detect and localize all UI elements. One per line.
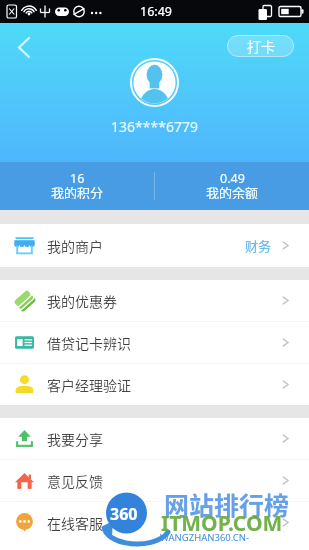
staticText: -WANGZHAN360.CN- bbox=[157, 531, 250, 544]
staticText: 16 bbox=[70, 170, 85, 187]
staticText: 16:49 bbox=[140, 3, 172, 20]
staticText: 在线客服 bbox=[47, 513, 103, 533]
staticText: 我的优惠券 bbox=[47, 291, 117, 311]
staticText: 我的积分 bbox=[51, 183, 104, 199]
button[interactable]: 0.49 bbox=[155, 169, 309, 203]
staticText: 我的商户 bbox=[47, 236, 103, 256]
staticText: 我要分享 bbox=[47, 429, 103, 449]
button[interactable]: 我的商户 bbox=[0, 224, 309, 267]
button[interactable]: 打卡 bbox=[227, 35, 294, 57]
button[interactable]: 我的优惠券 bbox=[0, 280, 309, 321]
staticText: 网站排行榜 bbox=[164, 486, 290, 522]
staticText: 财务 bbox=[245, 236, 272, 255]
staticText: 360 bbox=[110, 503, 138, 525]
staticText: 意见反馈 bbox=[47, 471, 103, 491]
button[interactable]: 借贷记卡辨识 bbox=[0, 322, 309, 363]
staticText: 0.49 bbox=[220, 170, 245, 187]
staticText: ITMOP.COM bbox=[161, 509, 283, 538]
staticText: 136****6779 bbox=[111, 117, 198, 136]
button[interactable]: 在线客服 bbox=[0, 502, 309, 543]
button[interactable]: 意见反馈 bbox=[0, 460, 309, 501]
staticText: 我的余额 bbox=[206, 183, 259, 199]
button[interactable]: 16 bbox=[0, 169, 154, 203]
button[interactable]: 客户经理验证 bbox=[0, 364, 309, 405]
button[interactable]: Back bbox=[4, 29, 44, 69]
staticText: 客户经理验证 bbox=[47, 375, 131, 395]
staticText: 借贷记卡辨识 bbox=[47, 333, 131, 353]
staticText: 打卡 bbox=[247, 36, 275, 56]
button[interactable]: 我要分享 bbox=[0, 418, 309, 459]
